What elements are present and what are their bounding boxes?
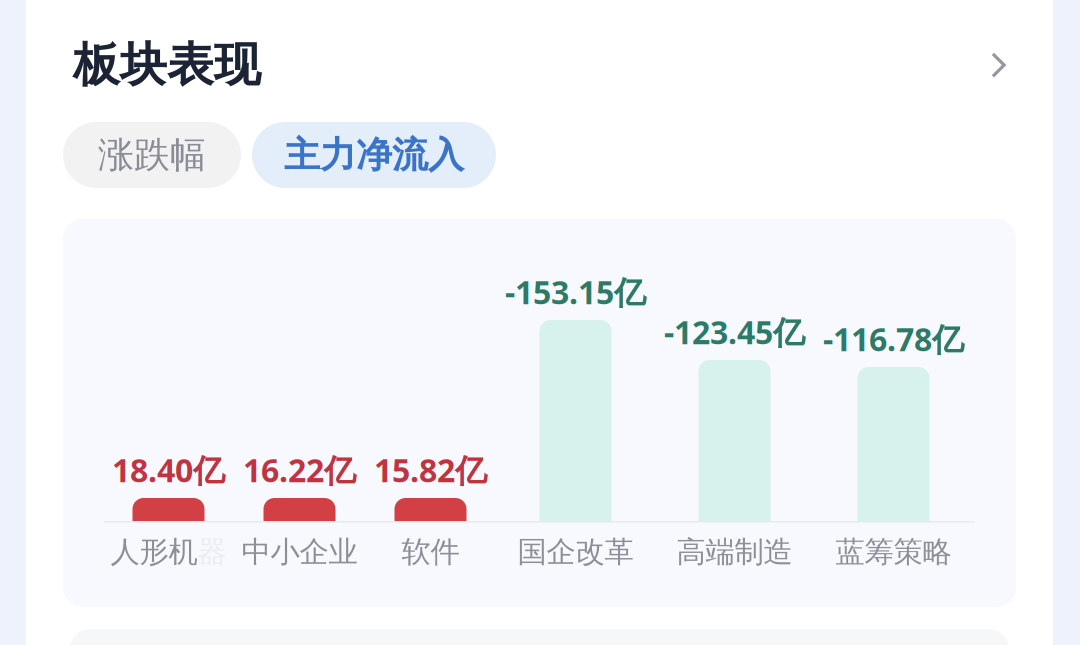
staticText: -123.45亿 xyxy=(664,310,805,353)
staticText: 16.22亿 xyxy=(243,448,356,491)
staticText: 人形机 xyxy=(110,534,197,570)
staticText: -153.15亿 xyxy=(505,270,646,313)
staticText: -116.78亿 xyxy=(823,317,964,360)
staticText: 涨跌幅 xyxy=(98,133,206,177)
button[interactable]: 主力净流入 xyxy=(252,122,496,188)
staticText: 软件 xyxy=(401,534,459,570)
button[interactable]: 涨跌幅 xyxy=(63,122,241,188)
staticText: 主力净流入 xyxy=(284,133,464,177)
staticText: 18.40亿 xyxy=(112,448,225,491)
staticText: 蓝筹策略 xyxy=(835,534,951,570)
staticText: 板块表现 xyxy=(73,36,261,94)
staticText: 中小企业 xyxy=(241,534,357,570)
button[interactable]: 板块表现 xyxy=(26,0,1053,122)
staticText: 高端制造 xyxy=(676,534,792,570)
staticText: 15.82亿 xyxy=(374,448,487,491)
staticText: 器 xyxy=(197,534,226,570)
staticText: 国企改革 xyxy=(517,534,633,570)
